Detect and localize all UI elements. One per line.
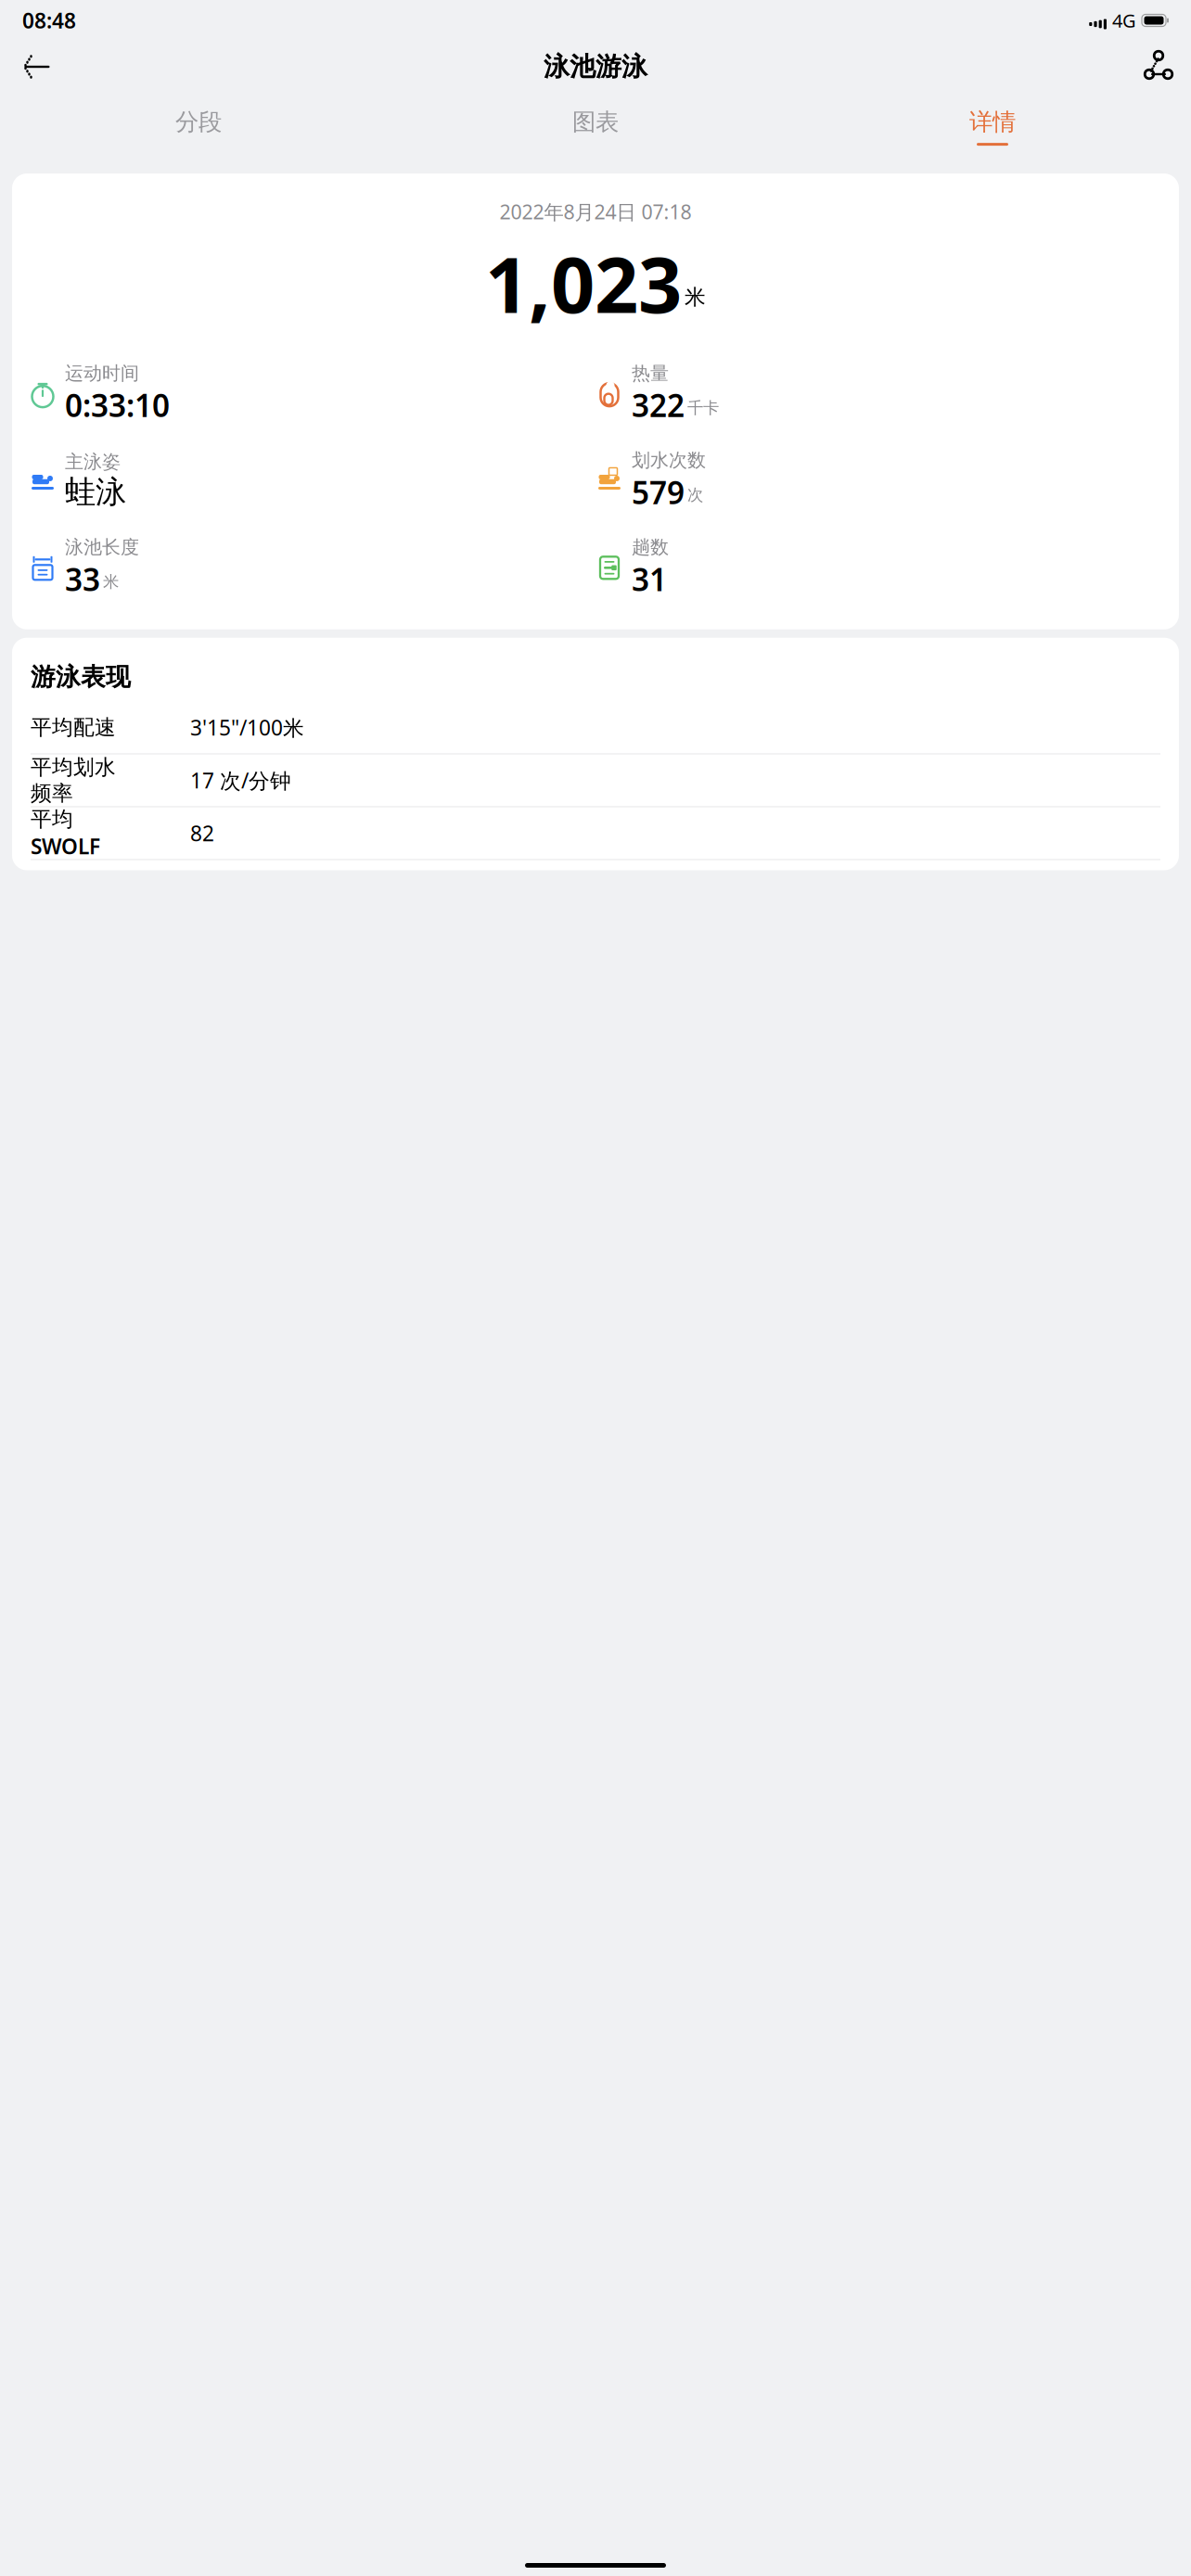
staticText: 千卡 [687,398,719,418]
staticText: 分段 [175,108,222,136]
staticText: 82 [190,819,214,847]
staticText: 次 [687,485,703,505]
staticText: 趟数 [632,536,669,559]
staticText: 1,023 [485,232,682,334]
button[interactable]: Share [1130,42,1180,92]
staticText: 322 [632,385,685,426]
staticText: 0:33:10 [65,385,170,426]
staticText: 3'15"/100米 [190,713,304,741]
button[interactable]: 详情 [794,98,1191,155]
staticText: 主泳姿 [65,450,121,473]
staticText: 579 [632,472,685,513]
staticText: 平均配速 [31,714,116,740]
staticText: 米 [103,572,119,592]
staticText: 运动时间 [65,362,139,385]
staticText: 平均划水频率 [31,754,116,806]
staticText: 热量 [632,362,669,385]
button[interactable]: Back [11,42,61,92]
staticText: 平均SWOLF [31,806,100,860]
staticText: 详情 [969,108,1016,136]
button[interactable]: 分段 [0,98,397,155]
staticText: 2022年8月24日 07:18 [499,199,692,225]
staticText: 游泳表现 [31,662,131,692]
staticText: 31 [632,559,667,600]
staticText: 4G [1112,8,1136,33]
staticText: 17 次/分钟 [190,766,291,794]
button[interactable]: 图表 [397,98,794,155]
staticText: 蛙泳 [65,473,126,511]
staticText: 划水次数 [632,449,706,472]
staticText: 图表 [572,108,619,136]
staticText: 33 [65,559,100,600]
staticText: 米 [685,284,706,310]
staticText: 08:48 [22,6,76,34]
staticText: 泳池游泳 [544,51,647,83]
staticText: 泳池长度 [65,536,139,559]
